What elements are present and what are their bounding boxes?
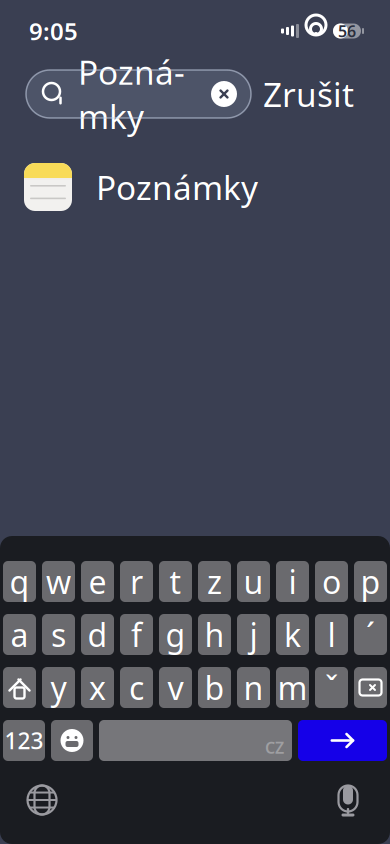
button[interactable]: p [354,561,387,602]
staticText: p [360,560,380,603]
staticText: ´ [366,613,375,656]
button[interactable]: l [315,614,348,655]
staticText: u [243,560,263,603]
staticText: w [46,560,71,603]
staticText: x [89,666,106,709]
staticText: k [284,613,301,656]
staticText: s [51,613,66,656]
staticText: 56 [338,20,356,42]
button[interactable]: w [42,561,75,602]
staticText: h [204,613,224,656]
staticText: f [131,613,142,656]
button[interactable]: r [120,561,153,602]
staticText: Poznámky [96,165,258,209]
staticText: c [129,666,144,709]
button[interactable]: v [159,667,192,708]
staticText: d [87,613,107,656]
staticText: j [249,613,257,656]
button[interactable]: Delete [354,667,387,708]
button[interactable]: b [198,667,231,708]
button[interactable]: t [159,561,192,602]
button[interactable]: j [237,614,270,655]
button[interactable]: u [237,561,270,602]
button[interactable]: o [315,561,348,602]
staticText: 123 [4,725,43,755]
staticText: g [165,613,185,656]
staticText: l [327,613,335,656]
staticText: t [169,560,181,603]
button[interactable]: Clear text [203,81,251,107]
staticText: i [288,560,296,603]
button[interactable]: Next keyboard [20,778,64,822]
staticText: e [88,560,106,603]
staticText: m [277,666,307,709]
staticText: a [10,613,28,656]
staticText: Zrušit [263,72,354,116]
button[interactable]: a [3,614,36,655]
button[interactable]: i [276,561,309,602]
button[interactable]: z [198,561,231,602]
staticText: y [50,666,66,709]
button[interactable]: Dictate [326,778,370,822]
button[interactable]: Return [298,720,387,761]
button[interactable]: Space [99,720,292,761]
staticText: z [207,560,222,603]
button[interactable]: ´ [354,614,387,655]
button[interactable]: ˇ [315,667,348,708]
button[interactable]: g [159,614,192,655]
button[interactable]: y [42,667,75,708]
button[interactable]: f [120,614,153,655]
staticText: q [9,560,29,603]
staticText: b [204,666,224,709]
button[interactable]: 123 [3,720,45,761]
staticText: ˇ [325,666,338,709]
staticText: 9:05 [29,15,78,47]
button[interactable]: d [81,614,114,655]
staticText: v [167,666,183,709]
button[interactable]: m [276,667,309,708]
button[interactable]: s [42,614,75,655]
button[interactable]: Shift [3,667,36,708]
button[interactable]: e [81,561,114,602]
staticText: CZ [265,737,284,758]
button[interactable]: x [81,667,114,708]
staticText: Poznámky [78,50,185,138]
staticText: r [130,560,143,603]
button[interactable]: Emoji [51,720,93,761]
button[interactable]: q [3,561,36,602]
button[interactable]: k [276,614,309,655]
button[interactable]: c [120,667,153,708]
staticText: o [322,560,341,603]
staticText: n [243,666,263,709]
button[interactable]: Poznámky [0,154,390,220]
button[interactable]: Zrušit [251,70,366,118]
button[interactable]: n [237,667,270,708]
button[interactable]: h [198,614,231,655]
